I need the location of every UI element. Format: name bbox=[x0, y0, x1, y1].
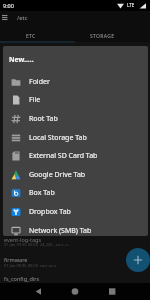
button[interactable]: Google Drive Tab bbox=[3, 165, 148, 184]
staticText: Dropbox Tab bbox=[29, 207, 71, 217]
button[interactable] bbox=[126, 248, 150, 272]
staticText: firmware bbox=[4, 256, 28, 263]
staticText: 9:00 bbox=[3, 2, 14, 9]
staticText: File bbox=[29, 95, 41, 105]
staticText: /etc bbox=[17, 14, 28, 22]
staticText: Local Storage Tab bbox=[29, 133, 87, 143]
staticText: event-log-tags bbox=[4, 236, 42, 243]
staticText: 01 Jan 09 06 00:00 24,226 -rw-r--r-- bbox=[4, 242, 71, 247]
button[interactable]: Folder bbox=[3, 72, 148, 91]
staticText: fs_config_dirs bbox=[4, 275, 40, 282]
staticText: 01 Jan 09 06 00:00 rw-r-xr-x bbox=[4, 263, 57, 268]
button[interactable]: File bbox=[3, 90, 148, 109]
staticText: External SD Card Tab bbox=[29, 151, 98, 161]
staticText: Folder bbox=[29, 77, 50, 87]
button[interactable]: Box Tab bbox=[3, 183, 148, 202]
staticText: ETC bbox=[26, 33, 36, 40]
button[interactable]: Network (SMB) Tab bbox=[3, 221, 148, 236]
button[interactable]: Dropbox Tab bbox=[3, 202, 148, 221]
button[interactable]: Root Tab bbox=[3, 109, 148, 128]
staticText: Google Drive Tab bbox=[29, 170, 86, 180]
staticText: LTE bbox=[127, 2, 135, 8]
staticText: Box Tab bbox=[29, 188, 55, 198]
staticText: New..... bbox=[9, 55, 34, 64]
button[interactable]: External SD Card Tab bbox=[3, 146, 148, 165]
staticText: Network (SMB) Tab bbox=[29, 226, 92, 236]
button[interactable]: Local Storage Tab bbox=[3, 128, 148, 147]
staticText: STORAGE bbox=[90, 33, 115, 40]
staticText: Root Tab bbox=[29, 114, 58, 124]
